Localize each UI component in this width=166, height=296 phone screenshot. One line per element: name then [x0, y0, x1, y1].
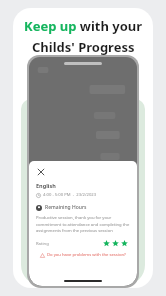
staticText: Keep up with your	[24, 17, 143, 35]
staticText: 4:00 - 5:00 PM - 23/2/2023	[43, 192, 97, 198]
staticText: Productive session, thank you for your c…	[36, 215, 130, 233]
button[interactable]: Rating 3 stars	[103, 240, 130, 247]
staticText: English	[36, 182, 56, 189]
staticText: Do you have problems with the session?	[47, 252, 126, 258]
staticText: Childs' Progress	[32, 38, 135, 56]
button[interactable]: Close	[36, 167, 46, 177]
button[interactable]: Do you have problems with the session?	[36, 252, 130, 258]
staticText: Rating	[36, 241, 49, 247]
staticText: Remaining Hours	[45, 204, 87, 211]
